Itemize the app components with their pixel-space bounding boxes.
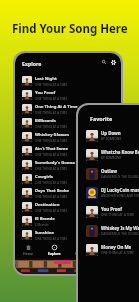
staticText: Money On Me [101,244,132,250]
staticText: Outlaw [101,168,117,174]
staticText: Explore [48,251,61,256]
staticText: ANOTHER SONG AND SOMETHING [101,194,139,198]
button[interactable]: Home [15,243,41,258]
button[interactable]: Whiskey Glasses [15,130,121,144]
staticText: ONE THING AT A TIME [35,209,68,213]
staticText: DANGEROUS THE DOUBLE ALBUM [101,232,139,236]
button[interactable]: Somebody's Gonna Need [15,158,121,172]
staticText: BY SOMEONE [101,156,122,160]
button[interactable]: Sunshine [15,228,121,242]
staticText: ONE THING AT A TIME [35,181,68,185]
staticText: ONE THING AT A TIME [35,195,68,199]
staticText: Sunshine [35,230,55,236]
button[interactable]: Cowgirls [15,172,121,186]
staticText: ONE THING AT A TIME [35,111,68,115]
staticText: DJ LuckyCoin mandapa [101,187,139,193]
staticText: You Proof [101,206,123,212]
staticText: ONE THING AT A TIME [35,167,68,171]
button[interactable]: You Proof [78,202,139,221]
button[interactable]: DJ LuckyCoin mandapa [78,183,139,202]
staticText: Whiskey Glasses [35,132,70,138]
staticText: ONE THING AT A TIME [35,139,68,143]
staticText: El Brande [35,223,49,227]
button[interactable]: Destination [15,200,121,214]
staticText: Somebody's Gonna Need [35,160,87,166]
staticText: One Thing At A Time [35,104,78,110]
button[interactable]: You Proof [15,88,121,102]
button[interactable]: El Brande [15,214,121,228]
staticText: Cowgirls [35,174,53,180]
button[interactable]: Explore [41,243,67,258]
staticText: ONE THING AT A TIME [35,125,68,129]
button[interactable]: Library [67,243,94,258]
button[interactable]: Money On Me [78,240,139,259]
button[interactable]: Settings [109,58,117,66]
staticText: DANGEROUS THE DOUBLE ALBUM [101,175,139,179]
staticText: Days That Broke [35,188,69,194]
button[interactable]: Up Down [78,126,139,145]
button[interactable]: Whatcha Know Bout That [78,145,139,164]
staticText: Whiskey Is My Way [101,225,139,231]
staticText: Billboards [35,118,56,124]
staticText: You Proof [35,90,56,96]
button[interactable]: Search [100,58,108,66]
staticText: ONE THING AT A TIME [35,153,68,157]
button[interactable]: Whiskey Is My Way [78,221,139,240]
button[interactable]: Days That Broke [15,186,121,200]
button[interactable]: Profile [94,243,121,258]
staticText: Last Night [35,76,57,82]
staticText: Whatcha Know Bout That [101,149,139,155]
staticText: ONE THING AT A TIME [35,97,68,101]
button[interactable]: Ain't That Some [15,144,121,158]
staticText: Favorite [90,115,113,122]
staticText: El Brande [35,216,55,222]
staticText: ONE THING AT A TIME [101,251,135,255]
staticText: Home [23,251,34,256]
staticText: Find Your Song Here [12,21,128,37]
button[interactable]: One Thing At A Time [15,102,121,116]
staticText: Destination [35,202,60,208]
staticText: Explore [22,60,42,67]
staticText: ONE THING AT A TIME [35,237,68,241]
button[interactable]: Outlaw [78,164,139,183]
staticText: ONE THING AT A TIME [35,83,68,87]
staticText: Ain't That Some [35,146,68,152]
staticText: Library [75,251,87,256]
staticText: Profile [102,251,114,256]
staticText: Up Down [101,130,121,136]
staticText: ONE THING AT A TIME [101,213,135,217]
staticText: BY SOMEONE [101,137,122,141]
button[interactable]: Billboards [15,116,121,130]
button[interactable]: Last Night [15,74,121,88]
